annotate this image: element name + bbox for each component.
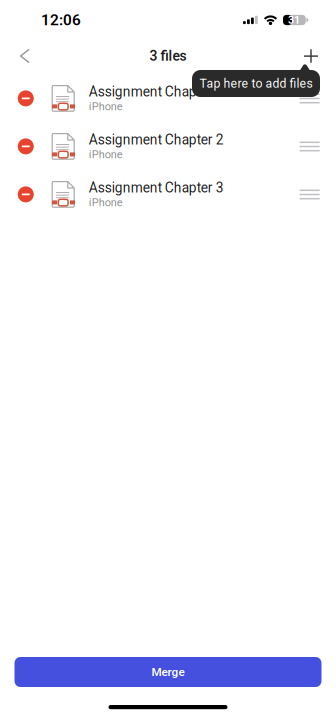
staticText: Tap here to add files	[199, 76, 312, 91]
staticText: Assignment Chapter 3	[89, 180, 224, 196]
button[interactable]: Reorder Assignment Chapter 2	[291, 122, 328, 170]
button[interactable]: Add files	[295, 42, 327, 70]
button[interactable]: Back	[9, 41, 41, 71]
staticText: iPhone	[89, 100, 123, 113]
staticText: iPhone	[89, 148, 123, 161]
staticText: Merge	[151, 665, 184, 679]
button[interactable]: Remove Assignment Chapter 3	[0, 170, 51, 218]
button[interactable]: Reorder Assignment Chapter 3	[291, 170, 328, 218]
staticText: Assignment Chapter 1	[89, 84, 224, 100]
staticText: iPhone	[89, 196, 123, 209]
staticText: 12:06	[41, 11, 81, 29]
button[interactable]: Reorder Assignment Chapter 1	[291, 74, 328, 122]
button[interactable]: Remove Assignment Chapter 2	[0, 122, 51, 170]
staticText: 3 files	[149, 48, 186, 64]
button[interactable]: Remove Assignment Chapter 1	[0, 74, 51, 122]
button[interactable]: Merge	[14, 657, 321, 687]
staticText: Assignment Chapter 2	[89, 132, 224, 148]
staticText: 31	[288, 14, 300, 26]
